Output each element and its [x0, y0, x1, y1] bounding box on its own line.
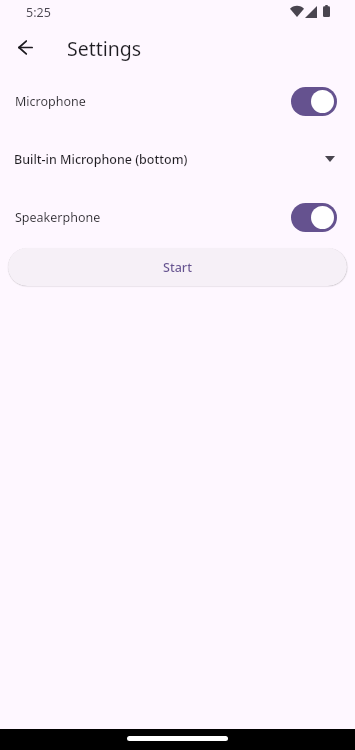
button[interactable]: Microphone — [0, 74, 355, 128]
button[interactable]: Back — [1, 24, 49, 70]
staticText: Settings — [67, 35, 142, 62]
button[interactable]: Start — [8, 248, 347, 286]
button[interactable]: Speakerphone — [0, 190, 355, 244]
staticText: Speakerphone — [15, 209, 291, 226]
staticText: 5:25 — [26, 4, 51, 21]
button[interactable]: Toggle Microphone — [291, 87, 337, 116]
staticText: Built-in Microphone (bottom) — [14, 151, 325, 168]
button[interactable]: Built-in Microphone (bottom) — [0, 130, 355, 188]
staticText: Microphone — [15, 93, 291, 110]
staticText: Start — [163, 259, 192, 276]
button[interactable]: Toggle Speakerphone — [291, 203, 337, 232]
